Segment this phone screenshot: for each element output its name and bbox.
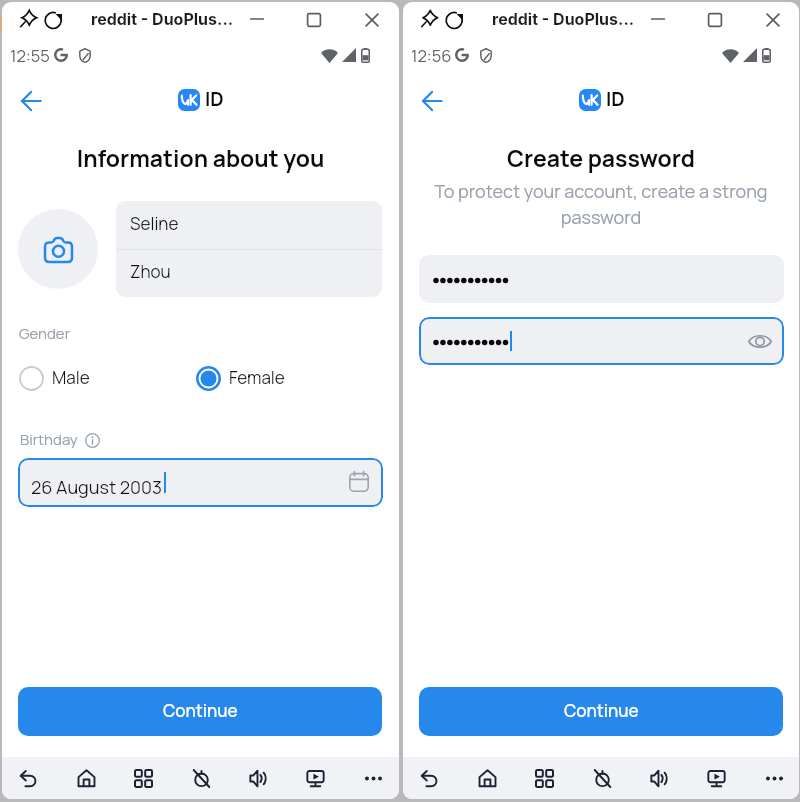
- staticText: 12:55: [10, 44, 50, 67]
- staticText: Gender: [19, 323, 71, 343]
- staticText: To protect your account, create a strong…: [429, 179, 773, 229]
- button[interactable]: Refresh: [446, 12, 463, 29]
- button[interactable]: Volume: [241, 761, 275, 795]
- button[interactable]: Back: [21, 91, 41, 111]
- button[interactable]: Minimize: [249, 11, 265, 27]
- button[interactable]: Back: [412, 761, 446, 795]
- button[interactable]: [192, 362, 294, 395]
- staticText: Seline: [130, 212, 179, 235]
- button[interactable]: Add photo: [18, 209, 98, 289]
- button[interactable]: Back: [11, 761, 45, 795]
- staticText: ID: [606, 86, 625, 112]
- staticText: 12:56: [411, 44, 452, 67]
- staticText: Male: [52, 366, 90, 389]
- staticText: Birthday: [20, 429, 78, 449]
- button[interactable]: Close: [765, 12, 781, 28]
- button[interactable]: More options: [356, 761, 390, 795]
- button[interactable]: Pin: [421, 11, 437, 27]
- staticText: Information about you: [2, 142, 399, 173]
- button[interactable]: Show password: [748, 333, 772, 350]
- button[interactable]: [15, 362, 118, 395]
- button[interactable]: Recent apps: [126, 761, 160, 795]
- button[interactable]: Continue: [419, 687, 783, 736]
- staticText: Continue: [564, 699, 639, 722]
- staticText: Create password: [403, 142, 799, 173]
- staticText: 26 August 2003: [31, 475, 162, 500]
- button[interactable]: Show password: [419, 317, 784, 365]
- button[interactable]: Volume: [642, 761, 676, 795]
- button[interactable]: Home: [470, 761, 504, 795]
- staticText: Zhou: [130, 260, 171, 283]
- button[interactable]: Maximize: [306, 12, 322, 28]
- button[interactable]: Home: [69, 761, 103, 795]
- staticText: ID: [205, 86, 224, 112]
- button[interactable]: Rotate: [585, 761, 619, 795]
- button[interactable]: Screen cast: [298, 761, 332, 795]
- button[interactable]: Screen cast: [699, 761, 733, 795]
- button[interactable]: [18, 458, 383, 507]
- button[interactable]: [116, 201, 382, 249]
- button[interactable]: Pin: [20, 11, 36, 27]
- button[interactable]: Continue: [18, 687, 382, 736]
- button[interactable]: Close: [364, 12, 380, 28]
- staticText: Female: [229, 366, 285, 389]
- button[interactable]: [116, 249, 382, 297]
- button[interactable]: Rotate: [184, 761, 218, 795]
- button[interactable]: Minimize: [650, 11, 666, 27]
- button[interactable]: More options: [757, 761, 791, 795]
- button[interactable]: Back: [422, 91, 442, 111]
- staticText: reddit - DuoPlus...: [492, 9, 635, 28]
- button[interactable]: Refresh: [45, 12, 62, 29]
- staticText: reddit - DuoPlus...: [91, 9, 234, 28]
- button[interactable]: Maximize: [707, 12, 723, 28]
- button[interactable]: [419, 255, 784, 303]
- button[interactable]: Recent apps: [527, 761, 561, 795]
- staticText: Continue: [163, 699, 238, 722]
